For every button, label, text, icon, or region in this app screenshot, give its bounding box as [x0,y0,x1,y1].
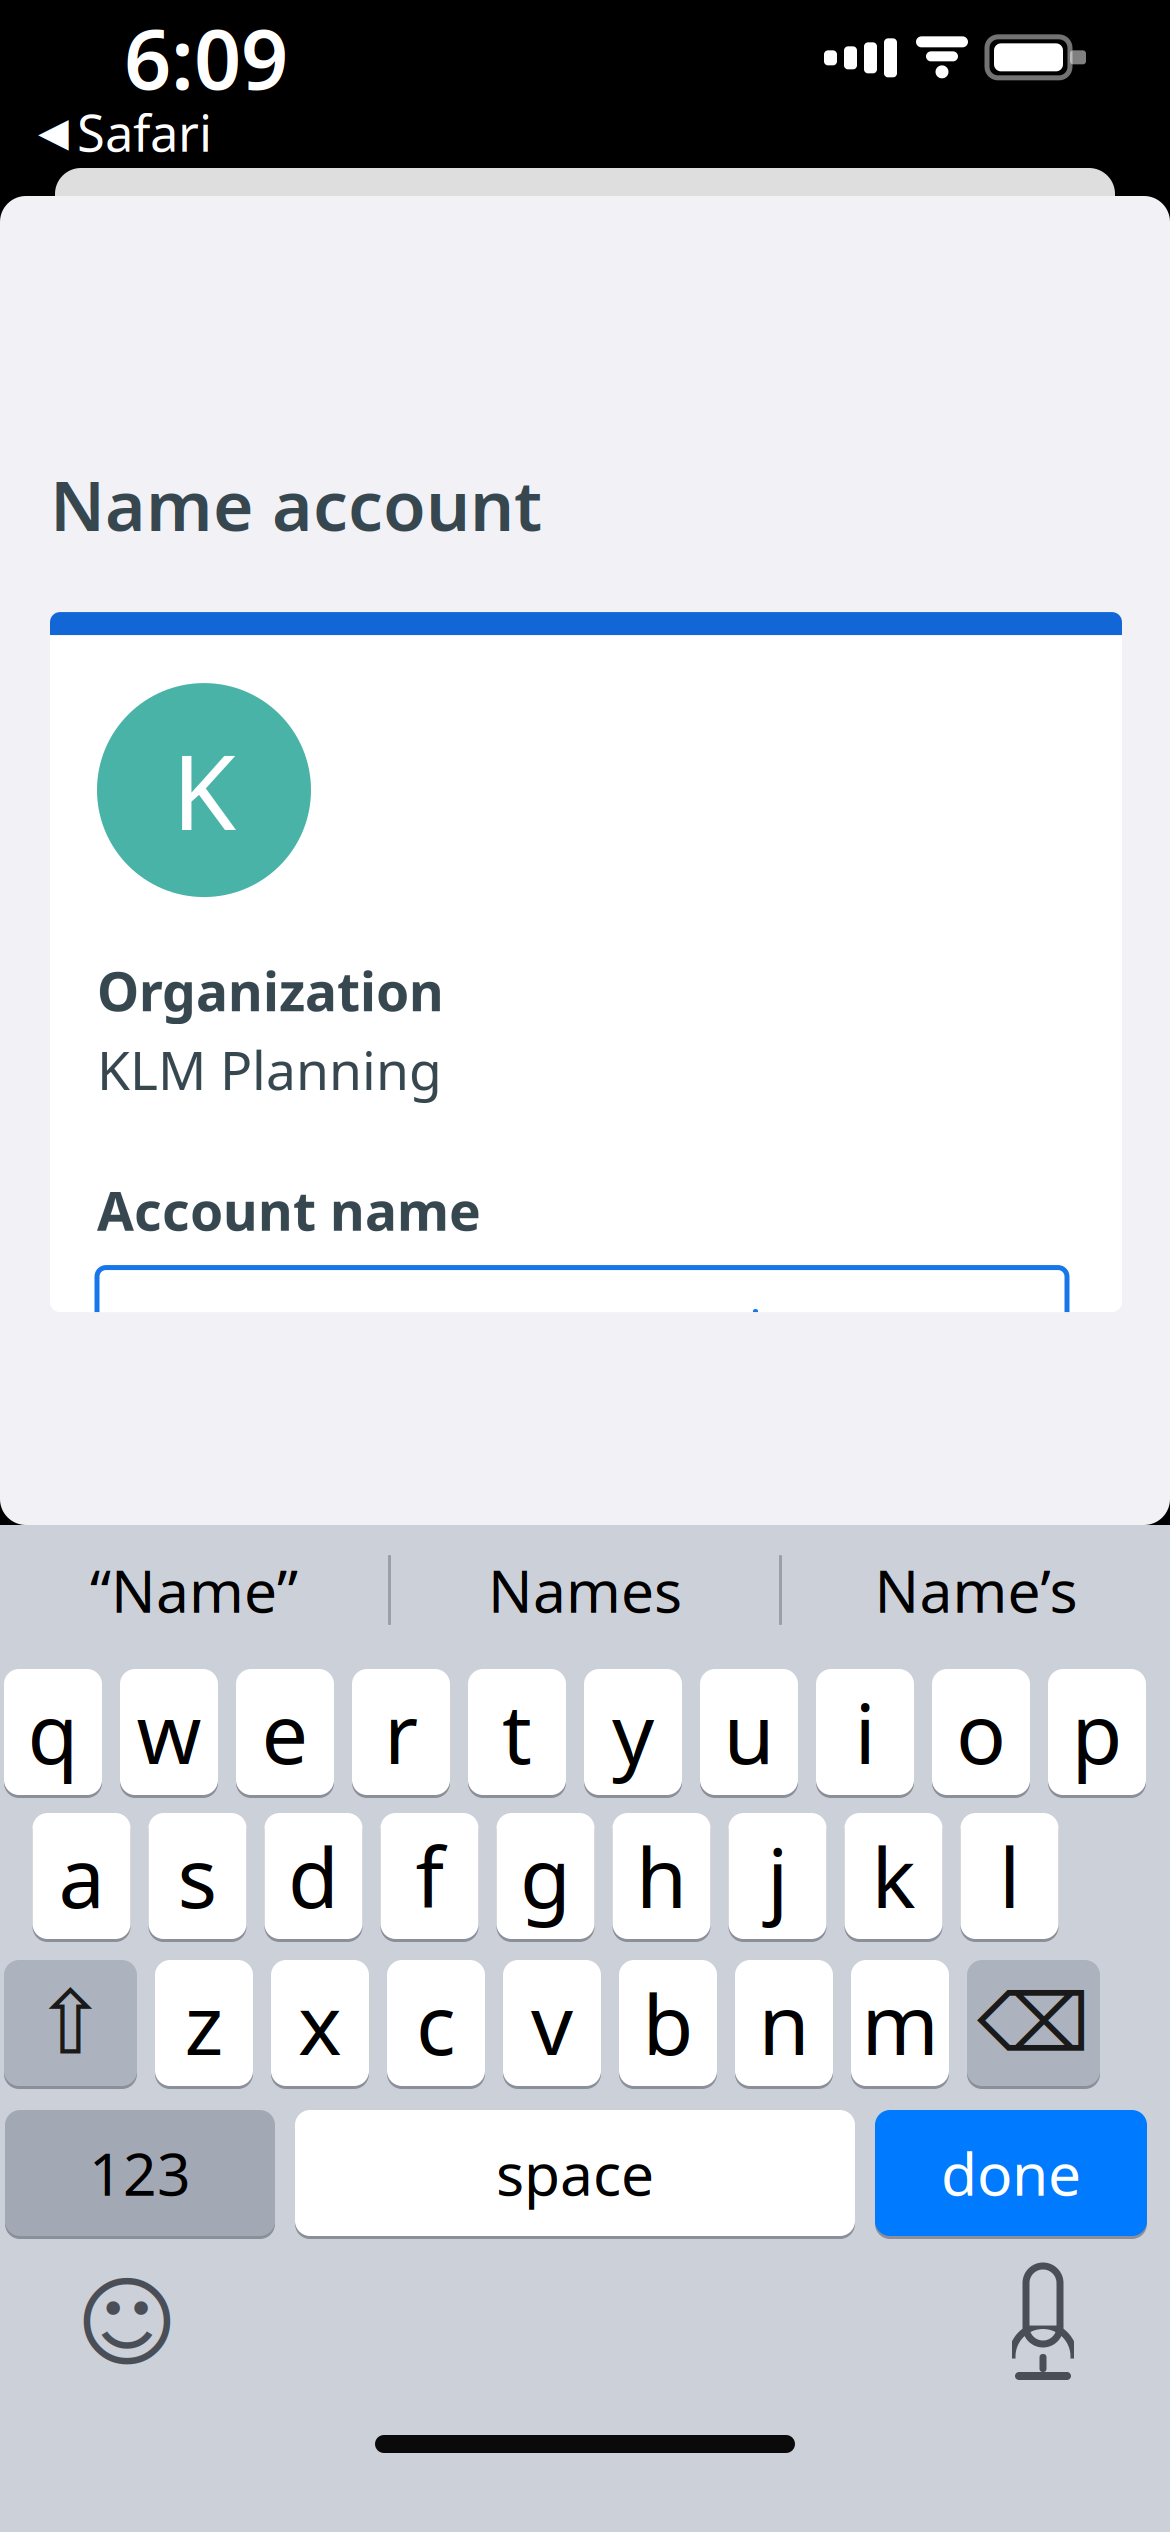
button[interactable]: space [295,2107,855,2239]
button[interactable]: Emoji [72,2268,182,2378]
staticText: z [184,1968,223,2078]
staticText: i [854,1677,875,1787]
staticText: 123 [89,2134,191,2212]
button[interactable]: c [387,1957,485,2089]
staticText: m [861,1968,938,2078]
button[interactable]: done [875,2107,1147,2239]
staticText: ⌫ [977,1978,1090,2068]
staticText: y [612,1677,654,1787]
staticText: done [941,2134,1081,2212]
button[interactable]: “Name” [0,1525,388,1655]
staticText: l [999,1821,1020,1931]
button[interactable]: Back to Safari [0,94,226,170]
button[interactable]: Delete [967,1957,1100,2089]
staticText: x [298,1968,342,2078]
staticText: ⇧ [33,1973,107,2073]
button[interactable]: Names [391,1525,779,1655]
button[interactable]: v [503,1957,601,2089]
button[interactable]: e [236,1666,334,1798]
button[interactable]: w [120,1666,218,1798]
staticText: g [520,1821,571,1931]
staticText: d [288,1821,339,1931]
staticText: Name’s [874,1551,1077,1629]
staticText: this account. [97,1517,432,1591]
button[interactable]: g [496,1810,594,1942]
button[interactable]: f [380,1810,478,1942]
button[interactable]: First Name Last Name [97,1267,1067,1404]
button[interactable]: q [4,1666,102,1798]
button[interactable]: o [932,1666,1030,1798]
staticText: First Name Last Name [143,1297,751,1375]
button[interactable]: x [271,1957,369,2089]
staticText: ☺ [75,2267,178,2379]
button[interactable]: a [32,1810,130,1942]
button[interactable]: i [816,1666,914,1798]
staticText: s [177,1821,217,1931]
staticText: f [415,1821,443,1931]
button[interactable]: n [735,1957,833,2089]
button[interactable]: j [728,1810,826,1942]
button[interactable]: y [584,1666,682,1798]
staticText: v [531,1968,573,2078]
staticText: a [58,1821,104,1931]
staticText: Name account [50,458,542,550]
staticText: u [723,1677,774,1787]
staticText: j [767,1821,788,1931]
button[interactable]: k [844,1810,942,1942]
button[interactable]: r [352,1666,450,1798]
staticText: o [956,1677,1006,1787]
button[interactable]: Dictation [988,2268,1098,2378]
staticText: Safari [77,98,212,166]
button[interactable]: 123 [5,2107,275,2239]
staticText: r [384,1677,418,1787]
staticText: e [261,1677,308,1787]
button[interactable]: Name’s [782,1525,1170,1655]
button[interactable]: p [1048,1666,1146,1798]
button[interactable]: l [960,1810,1058,1942]
button[interactable]: z [155,1957,253,2089]
staticText: h [636,1821,687,1931]
staticText: w [136,1677,201,1787]
staticText: c [416,1968,456,2078]
button[interactable]: b [619,1957,717,2089]
staticText: p [1071,1677,1122,1787]
button[interactable]: u [700,1666,798,1798]
staticText: b [642,1968,693,2078]
staticText: KLM Planning [97,1034,442,1105]
staticText: q [27,1677,78,1787]
staticText: “Name” [90,1551,298,1629]
staticText: Organization [97,955,444,1026]
staticText: Account name [97,1175,481,1245]
staticText: K [172,721,236,859]
staticText: k [871,1821,915,1931]
staticText: n [758,1968,809,2078]
button[interactable]: h [612,1810,710,1942]
button[interactable]: t [468,1666,566,1798]
button[interactable]: d [264,1810,362,1942]
staticText: ◀ [38,109,69,155]
button[interactable]: s [148,1810,246,1942]
staticText: Names [488,1551,682,1629]
staticText: 6:09 [124,2,288,112]
staticText: t [502,1677,532,1787]
button[interactable]: m [851,1957,949,2089]
staticText: space [496,2134,654,2212]
button[interactable]: Shift [4,1957,137,2089]
